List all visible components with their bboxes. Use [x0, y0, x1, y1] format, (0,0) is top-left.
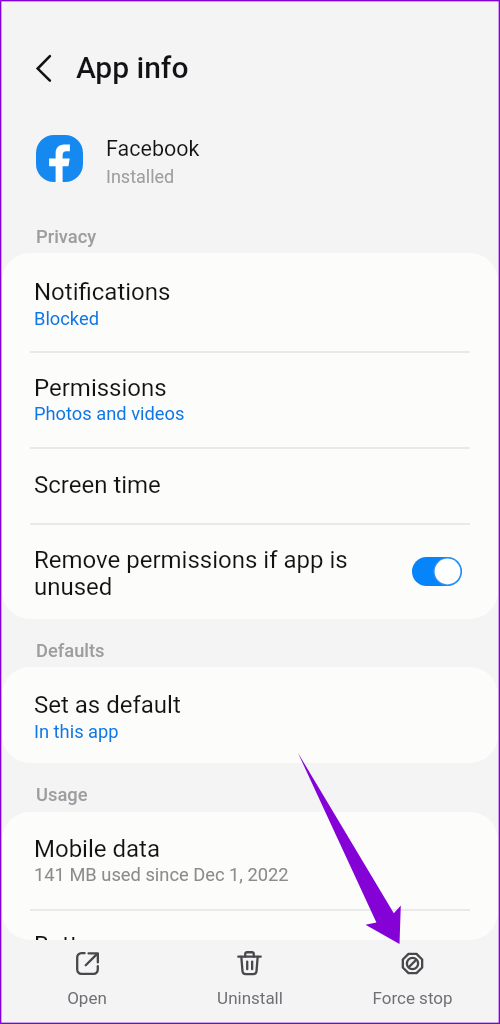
button[interactable]: Uninstall: [168, 940, 331, 1024]
staticText: App info: [76, 50, 189, 85]
button[interactable]: Back: [28, 44, 60, 90]
staticText: Battery: [34, 931, 111, 940]
button[interactable]: Notifications: [2, 253, 498, 351]
staticText: Photos and videos: [34, 403, 185, 424]
button[interactable]: Set as default: [2, 667, 498, 763]
staticText: Remove permissions if app is unused: [34, 546, 348, 600]
button[interactable]: Remove permissions toggle: [412, 557, 462, 586]
staticText: Open: [67, 988, 107, 1008]
staticText: Blocked: [34, 308, 99, 329]
staticText: Screen time: [34, 471, 161, 499]
button[interactable]: Remove permissions if app is unused: [2, 524, 498, 619]
button[interactable]: Open: [6, 940, 168, 1024]
staticText: 141 MB used since Dec 1, 2022: [34, 864, 289, 885]
staticText: Set as default: [34, 691, 181, 719]
staticText: In this app: [34, 721, 119, 742]
button[interactable]: Battery: [2, 910, 498, 940]
button[interactable]: Mobile data: [2, 812, 498, 909]
button[interactable]: Screen time: [2, 447, 498, 523]
staticText: Notifications: [34, 278, 171, 306]
staticText: Privacy: [36, 226, 97, 247]
staticText: Force stop: [372, 988, 453, 1008]
staticText: Permissions: [34, 374, 167, 402]
staticText: Defaults: [36, 640, 105, 661]
staticText: Usage: [36, 784, 88, 805]
button[interactable]: Permissions: [2, 352, 498, 447]
staticText: Mobile data: [34, 835, 160, 863]
staticText: Facebook: [106, 136, 200, 161]
staticText: Uninstall: [217, 988, 283, 1008]
staticText: Installed: [106, 166, 175, 187]
button[interactable]: Force stop: [331, 940, 494, 1024]
